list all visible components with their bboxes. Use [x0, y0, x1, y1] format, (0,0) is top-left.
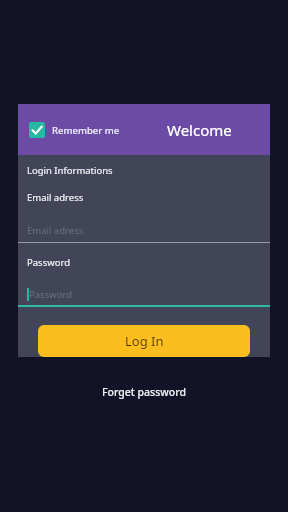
staticText: Forget password	[102, 385, 186, 399]
staticText: Log In	[125, 332, 164, 350]
staticText: Password	[29, 288, 72, 301]
staticText: Remember me	[52, 124, 120, 137]
button[interactable]: Log In	[38, 325, 250, 357]
button[interactable]: Password	[18, 283, 270, 305]
staticText: Email adress	[27, 224, 84, 237]
button[interactable]: Forget password	[92, 381, 196, 403]
staticText: Password	[27, 256, 70, 269]
staticText: Email adress	[27, 191, 84, 204]
staticText: Welcome	[167, 120, 232, 140]
staticText: Login Informations	[27, 164, 113, 177]
button[interactable]: Email adress	[18, 218, 270, 242]
button[interactable]: Remember me	[25, 116, 124, 144]
